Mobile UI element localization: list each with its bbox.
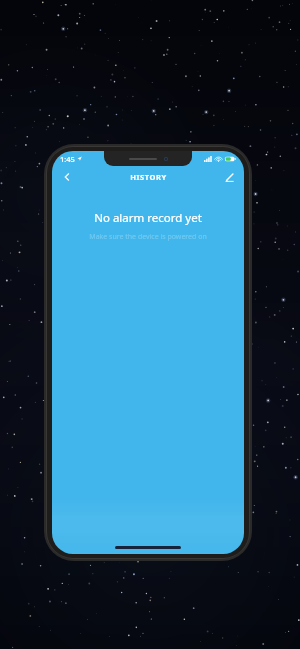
staticText: No alarm record yet: [52, 210, 244, 226]
button[interactable]: Back: [58, 168, 76, 186]
staticText: 1:45: [60, 154, 75, 164]
staticText: HISTORY: [130, 172, 167, 182]
button[interactable]: Edit: [220, 168, 238, 186]
staticText: Make sure the device is powered on: [52, 232, 244, 242]
